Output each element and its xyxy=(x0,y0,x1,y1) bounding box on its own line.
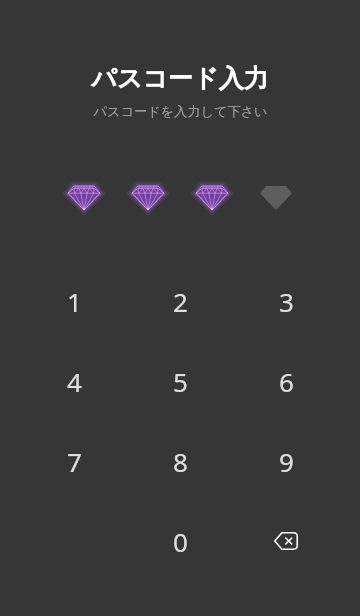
button[interactable]: 0 xyxy=(127,501,233,581)
staticText: 2 xyxy=(173,284,188,319)
button[interactable]: 9 xyxy=(233,421,339,501)
staticText: 8 xyxy=(173,444,188,479)
button[interactable]: 1 xyxy=(21,261,127,341)
button[interactable]: 4 xyxy=(21,341,127,421)
button[interactable]: 2 xyxy=(127,261,233,341)
staticText: 3 xyxy=(279,284,294,319)
staticText: パスコードを入力して下さい xyxy=(93,103,268,120)
staticText: 5 xyxy=(173,364,188,399)
button[interactable]: 7 xyxy=(21,421,127,501)
button[interactable]: 6 xyxy=(233,341,339,421)
staticText: 6 xyxy=(279,364,294,399)
staticText: 4 xyxy=(67,364,82,399)
button[interactable]: Delete xyxy=(233,501,339,581)
staticText: パスコード入力 xyxy=(91,63,269,94)
button[interactable]: 3 xyxy=(233,261,339,341)
button[interactable]: 8 xyxy=(127,421,233,501)
button[interactable]: 5 xyxy=(127,341,233,421)
other: Backspace xyxy=(274,532,298,550)
staticText: 1 xyxy=(67,284,82,319)
staticText: 7 xyxy=(67,444,82,479)
staticText: 0 xyxy=(173,524,188,559)
staticText: 9 xyxy=(279,444,294,479)
